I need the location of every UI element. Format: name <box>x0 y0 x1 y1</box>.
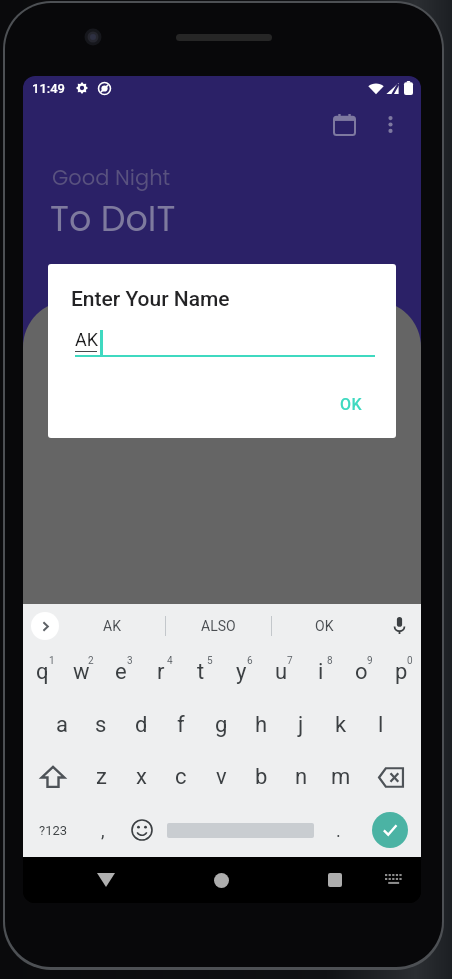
button[interactable]: Recent apps <box>313 858 357 902</box>
button[interactable]: z <box>82 751 121 803</box>
button[interactable]: Switch keyboard <box>372 858 416 902</box>
button[interactable]: Voice input <box>377 604 421 647</box>
staticText: z <box>96 764 107 790</box>
staticText: 8 <box>327 655 333 667</box>
button[interactable]: Home <box>199 858 243 902</box>
button[interactable]: ALSO <box>166 604 271 647</box>
button[interactable]: . <box>319 803 358 857</box>
staticText: d <box>135 712 148 738</box>
staticText: Good Night <box>52 163 171 192</box>
staticText: y <box>236 659 247 685</box>
button[interactable]: 4 <box>141 647 181 699</box>
staticText: To DoIT <box>50 194 176 243</box>
staticText: 3 <box>127 655 133 667</box>
button[interactable]: m <box>321 751 361 803</box>
button[interactable]: Emoji <box>122 803 161 857</box>
staticText: OK <box>315 618 334 634</box>
button[interactable]: 3 <box>101 647 141 699</box>
button[interactable] <box>161 803 319 857</box>
button[interactable]: b <box>241 751 281 803</box>
staticText: n <box>295 764 308 790</box>
button[interactable]: AK <box>59 604 165 647</box>
staticText: c <box>175 764 187 790</box>
staticText: v <box>216 764 227 790</box>
button[interactable]: l <box>361 699 401 751</box>
button[interactable]: ?123 <box>23 803 83 857</box>
staticText: ALSO <box>201 618 236 634</box>
button[interactable]: Back <box>84 858 128 902</box>
button[interactable]: Backspace <box>361 751 421 803</box>
staticText: AK <box>75 329 99 350</box>
button[interactable]: 7 <box>261 647 301 699</box>
staticText: w <box>73 659 90 685</box>
button[interactable]: 8 <box>301 647 341 699</box>
staticText: 0 <box>407 655 413 667</box>
button[interactable]: , <box>83 803 122 857</box>
staticText: s <box>95 712 107 738</box>
staticText: g <box>215 712 228 738</box>
button[interactable]: d <box>121 699 161 751</box>
button[interactable]: s <box>81 699 121 751</box>
staticText: 7 <box>287 655 293 667</box>
staticText: e <box>115 659 127 685</box>
button[interactable]: Expand suggestions <box>31 612 59 640</box>
button[interactable]: OK <box>332 389 370 420</box>
staticText: l <box>378 712 384 738</box>
staticText: m <box>331 764 351 790</box>
button[interactable]: 0 <box>381 647 421 699</box>
button[interactable]: 2 <box>62 647 101 699</box>
staticText: 9 <box>367 655 373 667</box>
button[interactable]: 1 <box>23 647 62 699</box>
staticText: 6 <box>247 655 253 667</box>
staticText: , <box>101 820 105 841</box>
staticText: q <box>36 659 49 685</box>
staticText: . <box>336 820 341 841</box>
staticText: 5 <box>207 655 213 667</box>
button[interactable]: More options <box>367 101 413 147</box>
staticText: OK <box>340 395 362 414</box>
button[interactable]: j <box>281 699 321 751</box>
button[interactable]: f <box>161 699 201 751</box>
staticText: o <box>355 659 368 685</box>
button[interactable]: g <box>201 699 241 751</box>
button[interactable]: k <box>321 699 361 751</box>
staticText: i <box>318 659 324 685</box>
staticText: 4 <box>167 655 173 667</box>
staticText: Enter Your Name <box>71 287 230 312</box>
staticText: u <box>275 659 288 685</box>
staticText: f <box>177 712 185 738</box>
button[interactable]: Enter <box>358 803 421 857</box>
staticText: r <box>157 659 165 685</box>
staticText: 11:49 <box>32 81 65 96</box>
staticText: t <box>197 659 205 685</box>
button[interactable]: h <box>241 699 281 751</box>
button[interactable]: a <box>42 699 81 751</box>
button[interactable]: c <box>161 751 201 803</box>
button[interactable]: OK <box>272 604 377 647</box>
staticText: a <box>56 712 68 738</box>
staticText: p <box>395 659 408 685</box>
button[interactable]: Shift <box>23 751 82 803</box>
button[interactable]: 9 <box>341 647 381 699</box>
button[interactable]: v <box>201 751 241 803</box>
staticText: x <box>136 764 147 790</box>
button[interactable]: Calendar <box>321 101 367 147</box>
staticText: 1 <box>49 655 55 667</box>
staticText: k <box>335 712 347 738</box>
button[interactable]: x <box>121 751 161 803</box>
button[interactable]: 6 <box>221 647 261 699</box>
staticText: ?123 <box>39 823 68 838</box>
staticText: j <box>298 712 304 738</box>
staticText: 2 <box>88 655 94 667</box>
staticText: b <box>255 764 268 790</box>
staticText: h <box>255 712 268 738</box>
button[interactable]: 5 <box>181 647 221 699</box>
button[interactable]: n <box>281 751 321 803</box>
staticText: AK <box>103 618 121 634</box>
